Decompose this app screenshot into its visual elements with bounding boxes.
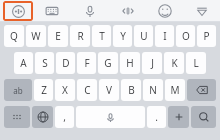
button[interactable]: E — [48, 25, 68, 47]
staticText: Q — [10, 29, 18, 43]
button[interactable]: L — [186, 52, 206, 74]
button[interactable]: J — [142, 52, 162, 74]
button[interactable]: F — [77, 52, 96, 74]
staticText: E — [55, 29, 61, 43]
button[interactable]: W — [26, 25, 46, 47]
button[interactable]: A — [14, 52, 33, 74]
staticText: R — [77, 29, 84, 43]
button[interactable]: Y — [113, 25, 132, 47]
staticText: ab — [13, 85, 23, 96]
staticText: O — [182, 29, 190, 43]
button[interactable]: M — [165, 79, 185, 101]
button[interactable]: I — [155, 25, 174, 47]
button[interactable]: . — [147, 106, 166, 128]
staticText: N — [149, 83, 157, 97]
staticText: . — [155, 110, 158, 124]
staticText: X — [62, 83, 68, 97]
staticText: U — [140, 29, 148, 43]
staticText: D — [62, 56, 70, 70]
button[interactable]: ab — [4, 79, 32, 101]
button[interactable]: Emoji — [146, 0, 183, 22]
staticText: B — [128, 83, 135, 97]
button[interactable]: D — [56, 52, 75, 74]
staticText: , — [63, 110, 66, 124]
button[interactable]: P — [197, 25, 216, 47]
button[interactable]: S — [35, 52, 54, 74]
button[interactable]: H — [120, 52, 140, 74]
button[interactable]: Hide keyboard — [183, 0, 220, 22]
staticText: H — [126, 56, 134, 70]
button[interactable]: Numbers — [4, 106, 30, 128]
staticText: Z — [41, 83, 47, 97]
staticText: J — [151, 56, 154, 70]
button[interactable]: Q — [4, 25, 24, 47]
button[interactable]: Z — [34, 79, 53, 101]
button[interactable]: Clipboard — [109, 0, 146, 22]
button[interactable]: V — [99, 79, 119, 101]
button[interactable]: G — [98, 52, 118, 74]
button[interactable]: Voice input — [71, 0, 109, 22]
button[interactable]: X — [55, 79, 75, 101]
button[interactable]: B — [121, 79, 141, 101]
button[interactable]: Backspace — [187, 79, 216, 101]
button[interactable]: Space — [76, 106, 145, 128]
button[interactable]: N — [143, 79, 163, 101]
button[interactable]: , — [55, 106, 74, 128]
button[interactable]: Settings — [168, 106, 189, 128]
staticText: W — [31, 29, 41, 43]
staticText: G — [104, 56, 112, 70]
staticText: S — [42, 56, 48, 70]
button[interactable]: C — [77, 79, 97, 101]
button[interactable]: Search — [191, 106, 216, 128]
staticText: C — [84, 83, 91, 97]
staticText: M — [170, 83, 180, 97]
staticText: P — [203, 29, 210, 43]
staticText: Y — [120, 29, 126, 43]
button[interactable]: U — [134, 25, 153, 47]
staticText: A — [20, 56, 27, 70]
staticText: I — [163, 29, 167, 43]
button[interactable]: O — [176, 25, 195, 47]
button[interactable]: R — [70, 25, 90, 47]
staticText: L — [193, 56, 199, 70]
staticText: V — [106, 83, 112, 97]
button[interactable]: Input method logo — [3, 1, 33, 21]
button[interactable]: Language — [32, 106, 53, 128]
button[interactable]: K — [164, 52, 184, 74]
staticText: K — [171, 56, 178, 70]
button[interactable]: T — [92, 25, 111, 47]
staticText: F — [84, 56, 90, 70]
button[interactable]: Keyboard layout — [33, 0, 71, 22]
staticText: T — [99, 29, 105, 43]
